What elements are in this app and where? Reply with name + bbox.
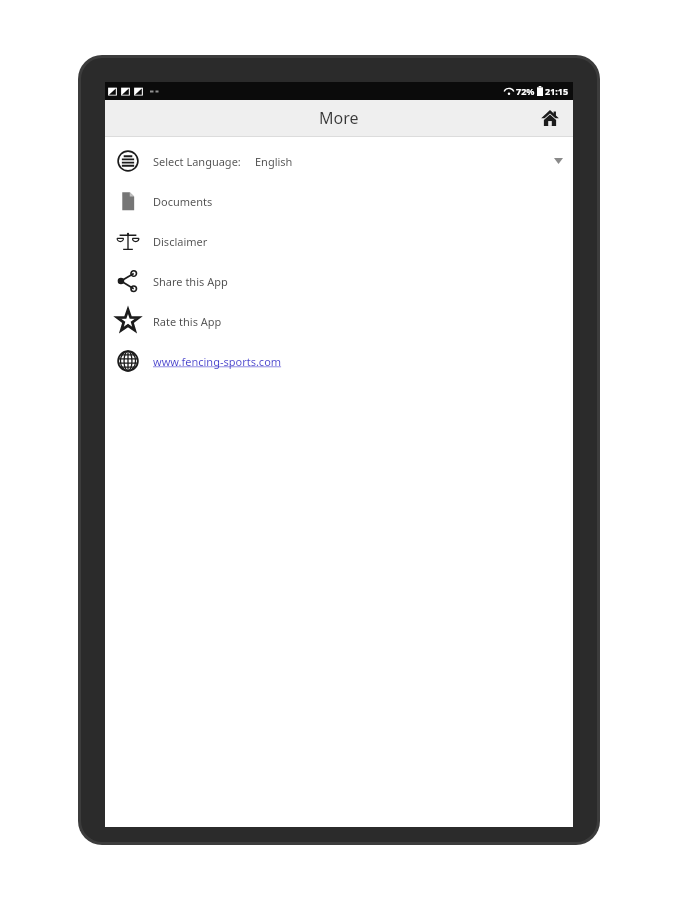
button[interactable]: Home xyxy=(537,105,563,131)
staticText: www.fencing-sports.com xyxy=(153,354,282,369)
staticText: Rate this App xyxy=(153,314,222,329)
staticText: Disclaimer xyxy=(153,234,208,249)
button[interactable]: www.fencing-sports.com xyxy=(105,341,573,381)
button[interactable]: Documents xyxy=(105,181,573,221)
staticText: Select Language: xyxy=(153,154,241,169)
staticText: More xyxy=(319,107,359,129)
button[interactable]: Rate this App xyxy=(105,301,573,341)
staticText: English xyxy=(255,154,293,169)
staticText: 21:15 xyxy=(545,85,569,97)
button[interactable]: Select Language: xyxy=(105,141,573,181)
staticText: Share this App xyxy=(153,274,228,289)
button[interactable]: Share this App xyxy=(105,261,573,301)
staticText: Documents xyxy=(153,194,213,209)
staticText: 72% xyxy=(516,85,535,97)
button[interactable]: Disclaimer xyxy=(105,221,573,261)
